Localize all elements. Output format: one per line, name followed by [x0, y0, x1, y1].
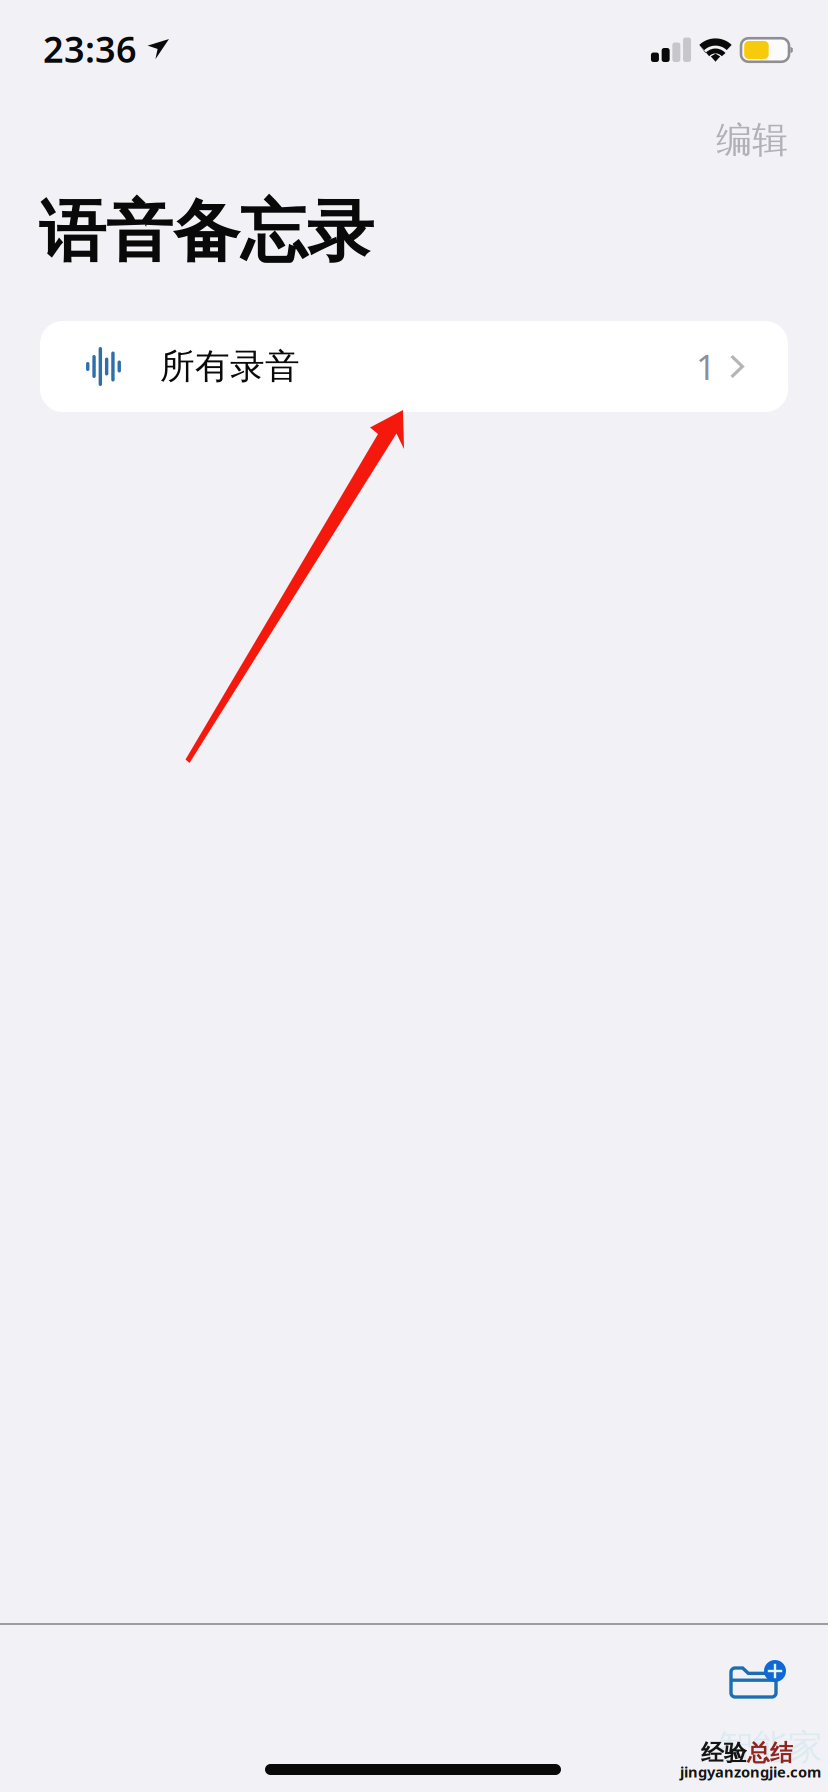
- staticText: 所有录音: [160, 345, 300, 388]
- staticText: 语音备忘录: [39, 191, 374, 273]
- staticText: 编辑: [716, 118, 788, 162]
- staticText: jingyanzongjie.com: [680, 1762, 821, 1781]
- button[interactable]: New Folder: [715, 1646, 800, 1715]
- staticText: 1: [696, 343, 716, 389]
- staticText: 总结: [747, 1739, 793, 1767]
- staticText: 23:36: [43, 25, 137, 73]
- button[interactable]: 所有录音: [40, 321, 788, 412]
- button[interactable]: 编辑: [702, 104, 802, 176]
- staticText: 经验: [701, 1739, 747, 1767]
- staticText: 智能家: [718, 1726, 823, 1769]
